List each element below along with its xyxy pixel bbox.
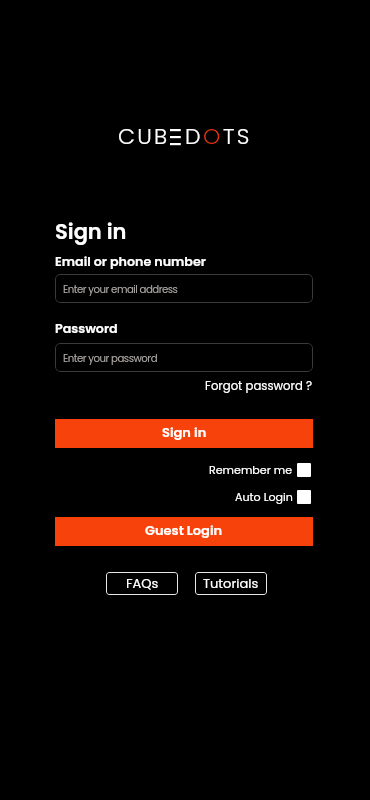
staticText: Enter your email address	[63, 282, 178, 296]
staticText: Enter your password	[63, 351, 158, 365]
button[interactable]: Guest Login	[55, 517, 313, 546]
staticText: Forgot password ?	[205, 378, 313, 394]
staticText: Email or phone number	[55, 253, 206, 271]
staticText: Guest Login	[145, 521, 223, 539]
staticText: TS	[223, 121, 252, 152]
button[interactable]: Sign in	[55, 419, 313, 448]
button[interactable]: Remember me	[209, 462, 313, 478]
staticText: Password	[55, 320, 118, 338]
staticText: O	[203, 121, 223, 152]
staticText: Sign in	[162, 423, 207, 441]
button[interactable]: Tutorials	[195, 572, 267, 595]
staticText: Remember me	[209, 462, 293, 478]
staticText: CUB	[118, 121, 170, 152]
staticText: Sign in	[55, 217, 127, 246]
button[interactable]: FAQs	[106, 572, 178, 595]
staticText: FAQs	[126, 574, 159, 592]
button[interactable]: Forgot password ?	[205, 378, 313, 394]
button[interactable]: Enter your email address	[55, 274, 313, 303]
button[interactable]: Enter your password	[55, 343, 313, 372]
staticText: Auto Login	[235, 489, 293, 505]
staticText: D	[185, 121, 203, 152]
button[interactable]: Auto Login	[235, 489, 313, 505]
staticText: Tutorials	[203, 574, 259, 592]
